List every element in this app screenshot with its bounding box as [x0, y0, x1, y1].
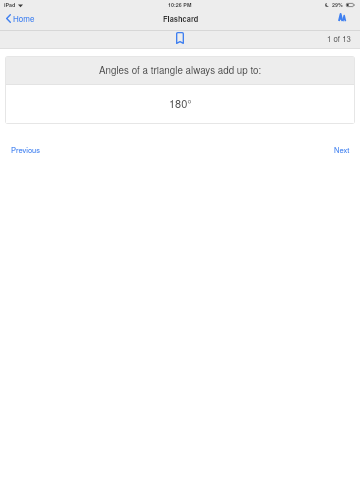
- staticText: Next: [334, 144, 350, 155]
- staticText: Flashcard: [163, 14, 199, 25]
- button[interactable]: Text size: [330, 13, 360, 28]
- staticText: iPad: [4, 1, 16, 9]
- button[interactable]: Home: [0, 11, 43, 29]
- button[interactable]: Next: [324, 142, 360, 159]
- staticText: 1 of 13: [327, 33, 351, 44]
- staticText: 10:26 PM: [168, 1, 192, 9]
- staticText: Home: [13, 13, 35, 24]
- button[interactable]: Bookmark: [168, 32, 192, 48]
- staticText: Angles of a triangle always add up to:: [99, 63, 262, 77]
- staticText: 29%: [332, 1, 343, 9]
- button[interactable]: Previous: [0, 142, 51, 159]
- staticText: Previous: [11, 144, 40, 155]
- staticText: 180°: [169, 95, 192, 111]
